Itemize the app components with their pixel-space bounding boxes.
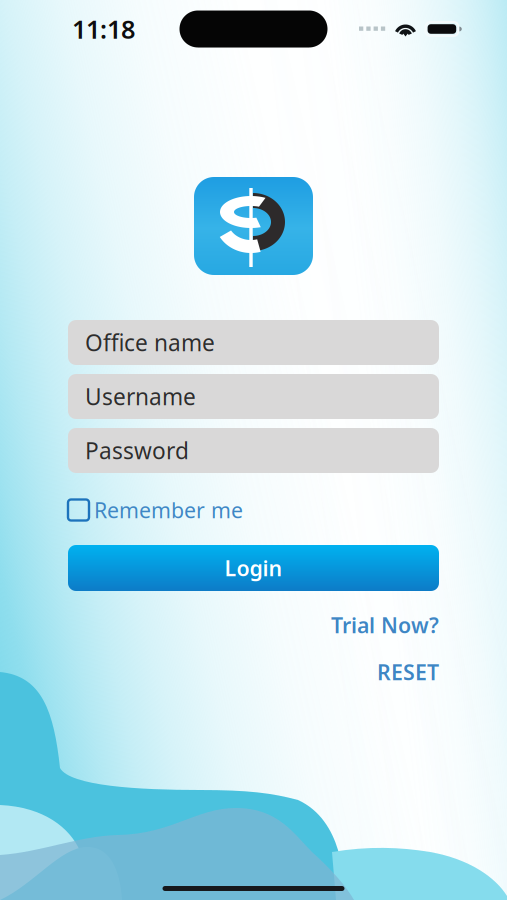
- staticText: RESET: [377, 658, 439, 686]
- button[interactable]: Password: [68, 428, 439, 473]
- staticText: Login: [224, 554, 282, 582]
- button[interactable]: RESET: [68, 658, 439, 686]
- staticText: Office name: [85, 327, 215, 357]
- staticText: Remember me: [94, 496, 243, 524]
- staticText: Password: [85, 435, 189, 465]
- button[interactable]: Username: [68, 374, 439, 419]
- button[interactable]: Login: [68, 545, 439, 591]
- button[interactable]: Remember me: [68, 498, 439, 522]
- staticText: 11:18: [72, 12, 135, 46]
- staticText: Username: [85, 381, 196, 411]
- button[interactable]: Trial Now?: [68, 611, 439, 639]
- staticText: Trial Now?: [331, 611, 439, 639]
- button[interactable]: Office name: [68, 320, 439, 365]
